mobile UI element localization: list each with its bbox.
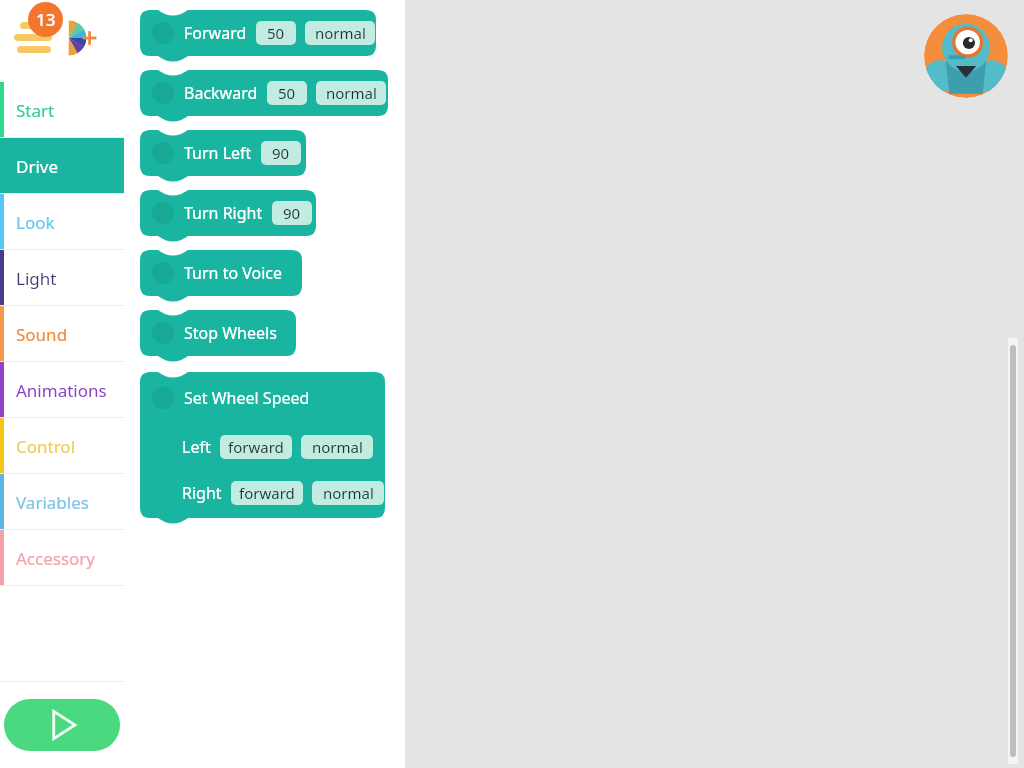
button[interactable]: normal (305, 21, 375, 45)
staticText: Variables (16, 491, 89, 514)
staticText: Sound (16, 323, 68, 346)
button[interactable]: Stop Wheels (140, 310, 300, 370)
button[interactable]: Sound (0, 306, 124, 362)
staticText: normal (312, 437, 363, 457)
staticText: Drive (16, 155, 59, 178)
button[interactable]: forward (220, 435, 292, 459)
button[interactable]: 90 (261, 141, 301, 165)
button[interactable]: Drive (0, 138, 124, 194)
button[interactable]: Accessory (0, 530, 124, 586)
staticText: Animations (16, 379, 107, 402)
button[interactable]: normal (316, 81, 386, 105)
staticText: Look (16, 211, 55, 234)
staticText: normal (326, 83, 377, 103)
button[interactable]: Play (4, 699, 120, 751)
staticText: Turn Left (184, 142, 252, 164)
button[interactable]: Turn to Voice (140, 250, 306, 310)
staticText: Turn to Voice (184, 262, 283, 284)
button[interactable]: 50 (267, 81, 307, 105)
staticText: Set Wheel Speed (184, 387, 310, 409)
staticText: 13 (36, 8, 56, 31)
button[interactable]: Control (0, 418, 124, 474)
button[interactable]: Add (60, 18, 100, 58)
staticText: Forward (184, 22, 247, 44)
button[interactable]: Variables (0, 474, 124, 530)
button[interactable]: Turn Left (140, 130, 310, 190)
button[interactable]: Start (0, 82, 124, 138)
staticText: forward (239, 483, 295, 503)
button[interactable]: Robot avatar (924, 14, 1008, 98)
staticText: Control (16, 435, 76, 458)
staticText: 50 (278, 83, 296, 103)
button[interactable]: Forward (140, 10, 380, 70)
button[interactable]: Animations (0, 362, 124, 418)
button[interactable]: 90 (272, 201, 312, 225)
button[interactable]: normal (312, 481, 384, 505)
staticText: forward (228, 437, 284, 457)
staticText: normal (323, 483, 374, 503)
button[interactable]: Set Wheel Speed (140, 372, 389, 532)
staticText: normal (315, 23, 366, 43)
staticText: Accessory (16, 547, 96, 570)
staticText: Turn Right (184, 202, 263, 224)
staticText: 90 (283, 203, 301, 223)
staticText: Backward (184, 82, 258, 104)
staticText: Start (16, 99, 55, 122)
staticText: Stop Wheels (184, 322, 277, 344)
button[interactable]: Light (0, 250, 124, 306)
button[interactable]: Turn Right (140, 190, 320, 250)
button[interactable]: Menu (14, 12, 60, 58)
button[interactable]: 50 (256, 21, 296, 45)
button[interactable]: Look (0, 194, 124, 250)
button[interactable]: forward (231, 481, 303, 505)
staticText: 90 (272, 143, 290, 163)
staticText: 50 (267, 23, 285, 43)
button[interactable]: normal (301, 435, 373, 459)
staticText: Right (182, 482, 222, 504)
button[interactable]: Backward (140, 70, 392, 130)
staticText: Left (182, 436, 211, 458)
staticText: Light (16, 267, 57, 290)
